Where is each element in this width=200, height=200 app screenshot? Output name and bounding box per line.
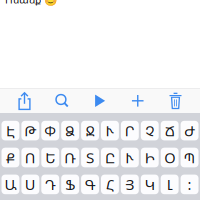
button[interactable]: Դ [41,175,59,194]
staticText: Դ [45,174,56,194]
staticText: Ռ [64,147,76,167]
button[interactable]: Կ [141,175,159,194]
button[interactable]: Փ [41,121,59,140]
staticText: Տ [86,147,94,167]
staticText: Չ [145,121,154,140]
button[interactable]: Ֆ [61,175,79,194]
button[interactable]: Ձ [61,121,79,140]
button[interactable]: Ս [21,175,39,194]
button[interactable]: Ը [101,148,119,167]
staticText: Կ [145,174,155,194]
button[interactable]: Ջ [81,121,99,140]
button[interactable]: Share [9,88,39,113]
button[interactable]: Յ [121,175,139,194]
staticText: Ս [25,174,36,194]
button[interactable]: Ք [1,148,19,167]
button[interactable]: Play [85,88,115,113]
staticText: Ճ [165,121,175,140]
button[interactable]: Տ [81,148,99,167]
staticText: Ո [25,147,36,167]
staticText: Ե [45,147,55,167]
staticText: Ֆ [65,174,75,194]
staticText: Ւ [125,147,134,167]
button[interactable]: : [181,175,198,194]
button[interactable]: Օ [161,148,179,167]
staticText: Ժ [184,121,195,140]
button[interactable]: Թ [21,121,39,140]
button[interactable]: Է [1,121,19,140]
button[interactable]: Լ [161,175,179,194]
button[interactable]: Add [123,88,153,113]
staticText: Պ [184,147,196,167]
button[interactable]: Search [47,88,77,113]
staticText: Է [6,121,15,140]
staticText: Թ [24,121,36,140]
button[interactable]: Չ [141,121,159,140]
staticText: Ոմանք 😊 [5,0,57,7]
button[interactable]: Ի [141,148,159,167]
staticText: Ը [105,147,115,167]
staticText: Օ [164,147,175,167]
staticText: Ր [125,121,135,140]
button[interactable]: Delete [160,88,190,113]
staticText: Ջ [85,121,94,140]
button[interactable]: Պ [181,148,198,167]
staticText: Ւ [105,121,114,140]
button[interactable]: Ռ [61,148,79,167]
staticText: Փ [44,121,56,140]
button[interactable]: Ա [1,175,19,194]
staticText: : [188,174,192,194]
staticText: Յ [125,174,134,194]
button[interactable]: Ե [41,148,59,167]
button[interactable]: Ժ [181,121,198,140]
staticText: Ա [4,174,16,194]
staticText: Լ [167,174,173,194]
button[interactable]: Գ [81,175,99,194]
button[interactable]: Ճ [161,121,179,140]
button[interactable]: Ւ [121,148,139,167]
staticText: Ք [6,147,15,167]
button[interactable]: Հ [101,175,119,194]
button[interactable]: Ր [121,121,139,140]
staticText: Ի [145,147,155,167]
staticText: Հ [106,174,114,194]
button[interactable]: Ո [21,148,39,167]
staticText: Գ [84,174,95,194]
button[interactable]: Ւ [101,121,119,140]
staticText: Ձ [65,121,75,140]
